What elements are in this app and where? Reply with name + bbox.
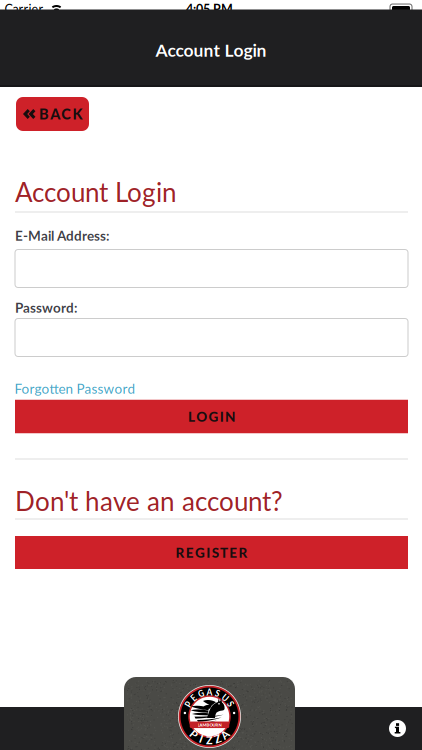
staticText: R	[175, 544, 184, 561]
staticText: U	[222, 693, 228, 703]
staticText: I	[200, 732, 203, 745]
staticText: LAMBOURN	[197, 722, 221, 727]
staticText: Forgotten Password	[14, 380, 135, 397]
staticText: S	[228, 699, 233, 709]
staticText: P	[186, 699, 191, 709]
button[interactable]: L	[15, 400, 408, 433]
staticText: Z	[214, 732, 221, 745]
staticText: E-Mail Address:	[15, 227, 109, 244]
staticText: G	[208, 408, 218, 425]
staticText: L	[188, 408, 195, 425]
staticText: Account Login	[155, 39, 266, 60]
staticText: O	[196, 408, 207, 425]
button[interactable]: Back	[16, 97, 89, 131]
staticText: E	[186, 544, 194, 561]
staticText: Password:	[15, 299, 77, 316]
staticText: S	[215, 689, 220, 699]
staticText: G	[198, 689, 204, 699]
staticText: A	[221, 728, 229, 741]
staticText: I	[220, 408, 224, 425]
staticText: K	[72, 105, 82, 123]
staticText: N	[225, 408, 235, 425]
staticText: E	[191, 693, 196, 703]
staticText: Carrier	[4, 1, 43, 16]
staticText: C	[61, 105, 71, 123]
staticText: A	[50, 105, 60, 123]
staticText: Account Login	[15, 176, 177, 208]
staticText: I	[206, 544, 210, 561]
staticText: B	[39, 105, 49, 123]
staticText: S	[212, 544, 219, 561]
staticText: T	[220, 544, 228, 561]
staticText: E	[229, 544, 237, 561]
button[interactable]: Information	[385, 716, 409, 740]
staticText: R	[238, 544, 247, 561]
button[interactable]: Forgotten Password	[14, 380, 135, 397]
staticText: A	[206, 687, 212, 697]
staticText: P	[190, 728, 197, 741]
staticText: Don't have an account?	[15, 485, 283, 517]
staticText: G	[195, 544, 205, 561]
button[interactable]: R	[15, 536, 408, 569]
staticText: 4:05 PM	[186, 1, 233, 16]
staticText: Z	[206, 733, 213, 747]
